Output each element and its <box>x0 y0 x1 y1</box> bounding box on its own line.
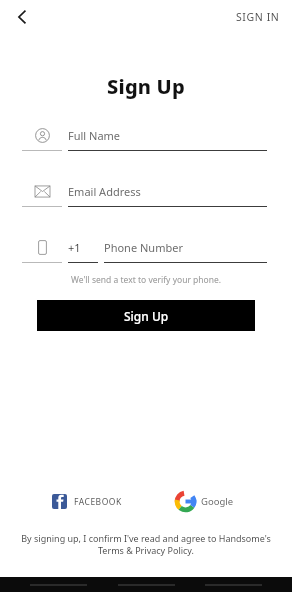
other: Sign up with Google <box>176 492 195 511</box>
button[interactable]: Sign Up <box>37 300 255 331</box>
other: Phone <box>35 240 50 255</box>
button[interactable]: Back <box>4 0 40 34</box>
button[interactable]: Sign up with Facebook <box>28 494 146 509</box>
button[interactable]: Email <box>22 182 267 207</box>
staticText: SIGN IN <box>236 10 280 24</box>
staticText: Email Address <box>68 184 141 199</box>
button[interactable]: Name <box>22 126 267 151</box>
staticText: We'll send a text to verify your phone. <box>71 274 222 286</box>
staticText: FACEBOOK <box>74 496 122 508</box>
staticText: Phone Number <box>104 240 183 255</box>
other: Name <box>35 128 50 143</box>
button[interactable]: Sign up with Google <box>146 492 264 511</box>
other: Email <box>35 184 50 199</box>
other: Sign up with Facebook <box>52 494 67 509</box>
staticText: +1 <box>68 240 81 255</box>
button[interactable]: SIGN IN <box>224 4 292 30</box>
staticText: Google <box>201 495 234 508</box>
staticText: Sign Up <box>124 308 169 324</box>
button[interactable]: Phone <box>22 238 267 263</box>
staticText: Sign Up <box>107 73 185 100</box>
staticText: By signing up, I confirm I've read and a… <box>16 532 276 557</box>
staticText: Full Name <box>68 128 121 143</box>
button[interactable]: By signing up, I confirm I've read and a… <box>16 532 276 557</box>
